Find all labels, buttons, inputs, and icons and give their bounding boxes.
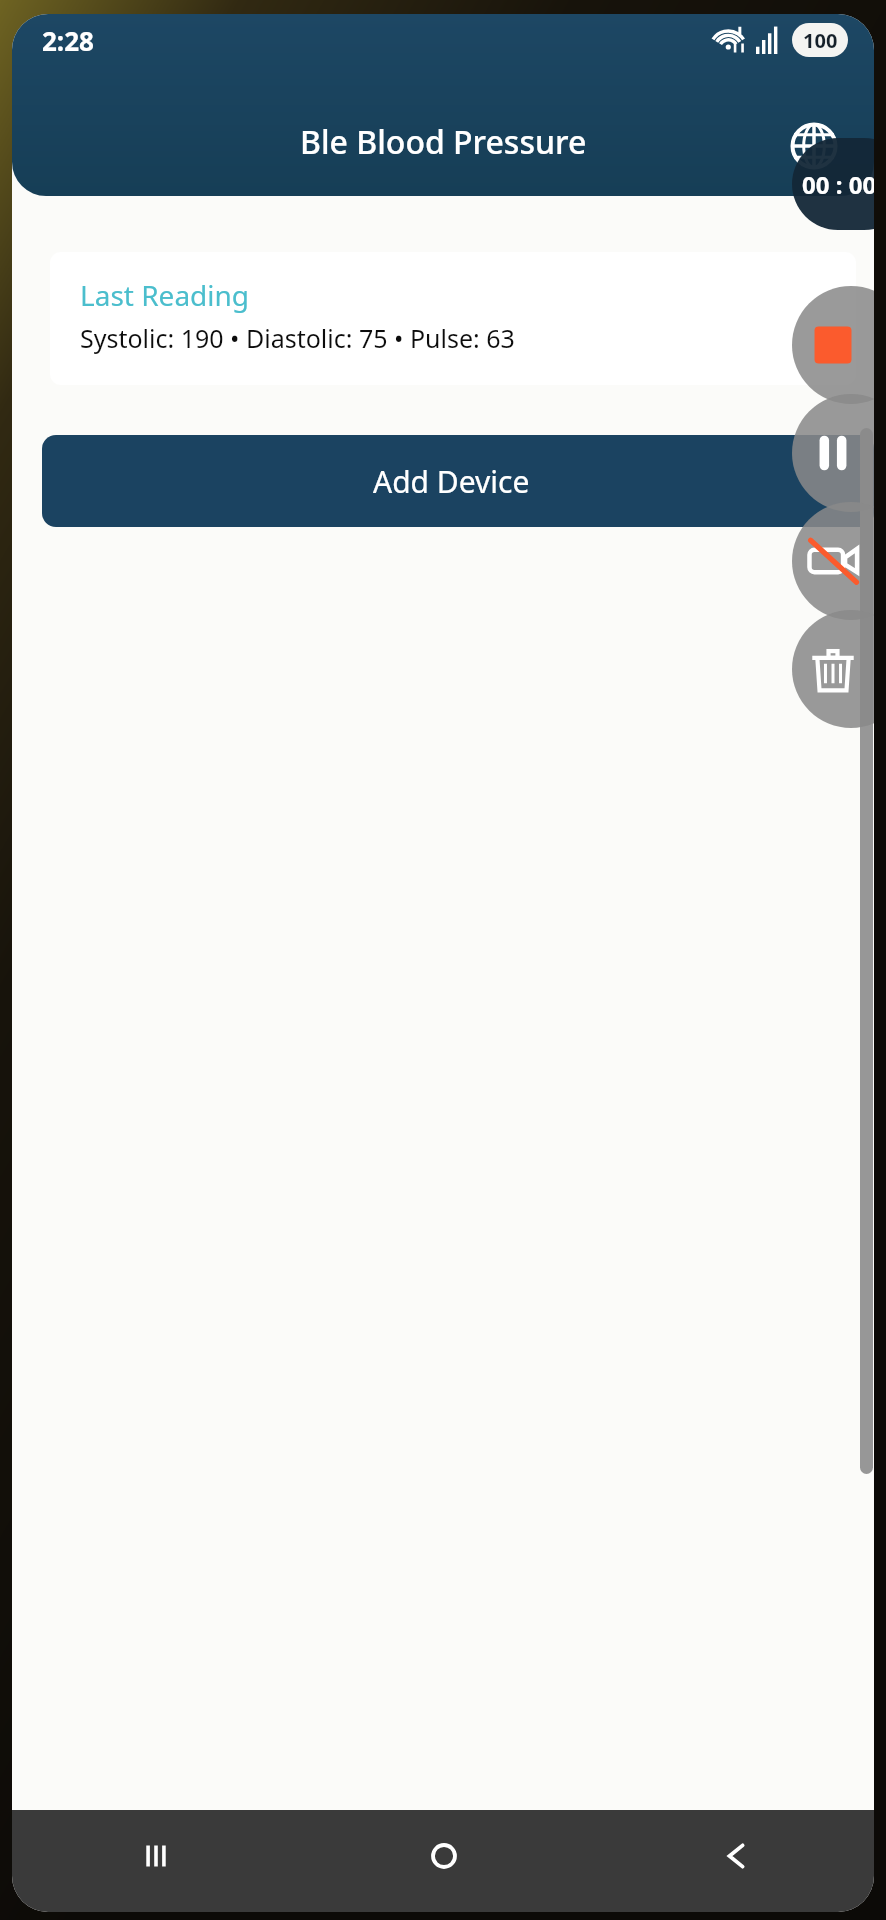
button[interactable]: Add Device: [42, 435, 874, 527]
staticText: Systolic: 190 • Diastolic: 75 • Pulse: 6…: [80, 321, 515, 355]
button[interactable]: Last Reading: [50, 252, 856, 385]
button[interactable]: 00 : 00: [792, 138, 874, 230]
button[interactable]: Home: [300, 1810, 587, 1902]
button[interactable]: Language: [776, 108, 852, 184]
staticText: 00 : 00: [802, 168, 874, 201]
button[interactable]: Turn camera off: [792, 502, 874, 620]
button[interactable]: Pause recording: [792, 394, 874, 512]
button[interactable]: Back: [587, 1810, 874, 1902]
button[interactable]: Recent apps: [12, 1810, 300, 1902]
staticText: Add Device: [373, 461, 530, 502]
button[interactable]: Stop recording: [792, 286, 874, 404]
staticText: Ble Blood Pressure: [300, 120, 587, 164]
staticText: 100: [803, 27, 838, 54]
button[interactable]: Delete recording: [792, 610, 874, 728]
staticText: 2:28: [42, 23, 94, 58]
staticText: Last Reading: [80, 276, 250, 314]
